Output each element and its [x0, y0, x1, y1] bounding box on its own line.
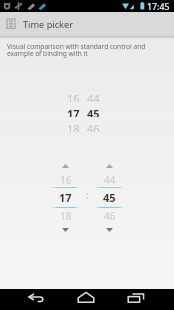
- button[interactable]: Decrement: [96, 224, 123, 235]
- staticText: Time picker: [23, 18, 73, 31]
- button[interactable]: Decrement: [52, 224, 79, 235]
- button[interactable]: Increment: [52, 159, 79, 172]
- staticText: 18: [60, 209, 72, 223]
- staticText: 16: [67, 91, 80, 102]
- button[interactable]: App icon: [4, 17, 17, 31]
- staticText: 45: [87, 106, 100, 117]
- staticText: 46: [104, 209, 116, 223]
- button[interactable]: Increment: [96, 159, 123, 172]
- staticText: 45: [103, 190, 116, 205]
- staticText: 17:45: [147, 1, 170, 13]
- button[interactable]: Back: [16, 289, 56, 310]
- staticText: 44: [104, 173, 116, 187]
- staticText: 18: [67, 121, 80, 132]
- staticText: :: [86, 188, 89, 202]
- staticText: 44: [87, 91, 100, 102]
- staticText: 17: [67, 106, 80, 117]
- staticText: 17: [59, 190, 72, 205]
- staticText: Visual comparison with standard control …: [7, 42, 146, 58]
- button[interactable]: Recents: [116, 289, 156, 310]
- staticText: 16: [60, 173, 72, 187]
- button[interactable]: Home: [66, 289, 106, 310]
- staticText: 46: [87, 121, 100, 132]
- button[interactable]: 45: [96, 188, 123, 207]
- button[interactable]: 17: [52, 188, 79, 207]
